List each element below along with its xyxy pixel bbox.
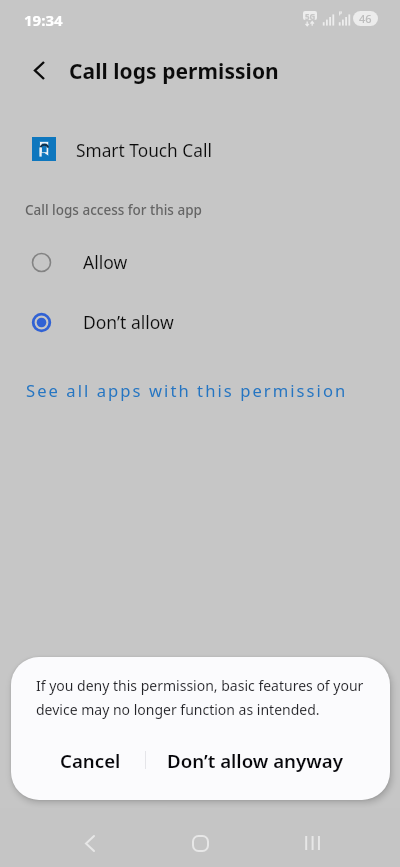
button[interactable]: Don’t allow anyway (157, 739, 353, 781)
staticText: Allow (83, 250, 128, 274)
staticText: Don’t allow (83, 310, 174, 334)
button[interactable]: Recent apps (289, 820, 335, 866)
button[interactable]: Allow (0, 241, 400, 283)
staticText: Call logs permission (69, 57, 279, 86)
staticText: See all apps with this permission (26, 379, 348, 402)
staticText: If you deny this permission, basic featu… (36, 676, 388, 719)
staticText: Call logs access for this app (25, 201, 202, 219)
staticText: Cancel (60, 748, 121, 773)
button[interactable]: Home (177, 820, 223, 866)
button[interactable]: Don’t allow (0, 301, 400, 343)
button[interactable]: Back (67, 820, 113, 866)
staticText: Don’t allow anyway (167, 748, 343, 773)
staticText: 46 (359, 11, 372, 26)
button[interactable]: See all apps with this permission (0, 372, 400, 408)
staticText: 5G (305, 11, 316, 20)
staticText: Smart Touch Call (76, 139, 212, 163)
button[interactable]: Cancel (30, 739, 150, 781)
button[interactable]: Navigate up (22, 53, 56, 87)
staticText: 19:34 (24, 10, 63, 30)
